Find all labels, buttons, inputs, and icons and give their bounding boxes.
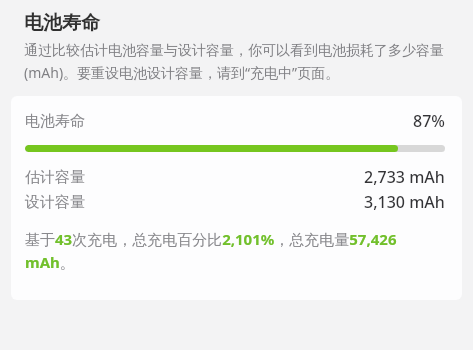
button[interactable]: 电池寿命 xyxy=(11,96,462,300)
staticText: 估计容量 xyxy=(25,168,85,187)
staticText: 3,130 mAh xyxy=(364,191,445,213)
staticText: 通过比较估计电池容量与设计容量，你可以看到电池损耗了多少容量(mAh)。要重设电… xyxy=(24,42,453,82)
staticText: 电池寿命 xyxy=(25,112,85,131)
staticText: 87% xyxy=(413,110,445,132)
staticText: 电池寿命 xyxy=(24,11,100,35)
staticText: 设计容量 xyxy=(25,193,85,212)
staticText: 基于43次充电，总充电百分比2,101%，总充电量57,426 mAh。 xyxy=(25,229,445,273)
staticText: 2,733 mAh xyxy=(364,166,445,188)
